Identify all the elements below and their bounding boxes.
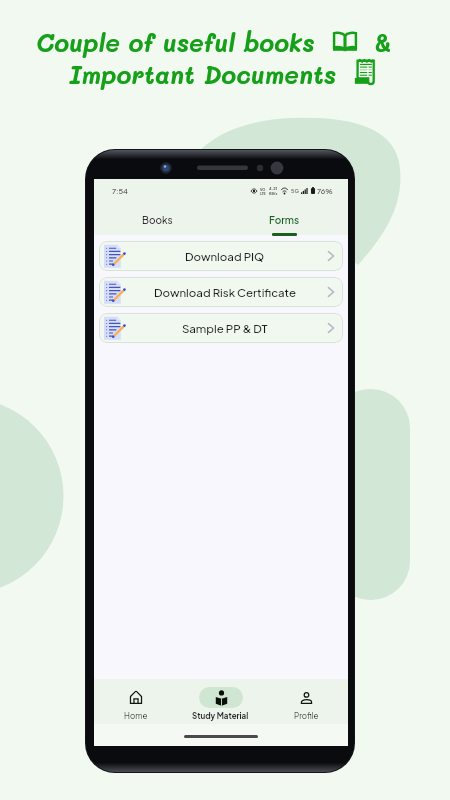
button[interactable]: Download Risk Certificate xyxy=(99,277,343,307)
button[interactable]: Study Material xyxy=(189,687,252,721)
staticText: Download PIQ xyxy=(185,249,265,263)
staticText: Important Documents xyxy=(69,58,337,90)
button[interactable]: Download PIQ xyxy=(99,241,343,271)
button[interactable]: Forms xyxy=(221,206,348,235)
staticText: Books xyxy=(142,214,173,227)
staticText: Profile xyxy=(294,711,319,721)
staticText: Study Material xyxy=(192,711,249,721)
staticText: KB/s xyxy=(269,191,278,195)
staticText: 7:54 xyxy=(112,186,128,195)
staticText: Download Risk Certificate xyxy=(154,285,297,299)
staticText: 4.21 xyxy=(269,186,278,191)
staticText: Couple of useful books xyxy=(36,26,315,58)
staticText: VO xyxy=(260,187,266,191)
staticText: 76% xyxy=(317,186,333,195)
staticText: Home xyxy=(124,711,148,721)
staticText: & xyxy=(374,26,393,58)
staticText: Sample PP & DT xyxy=(182,321,268,335)
button[interactable]: Home xyxy=(111,687,161,721)
other: Home xyxy=(130,691,142,704)
staticText: Forms xyxy=(269,214,300,227)
button[interactable]: Sample PP & DT xyxy=(99,313,343,343)
button[interactable]: Profile xyxy=(281,687,331,721)
staticText: 5G xyxy=(291,187,299,194)
button[interactable]: Books xyxy=(94,206,221,235)
other: Profile xyxy=(301,692,312,704)
other: Study Material xyxy=(215,690,228,706)
staticText: LTE xyxy=(260,191,266,195)
